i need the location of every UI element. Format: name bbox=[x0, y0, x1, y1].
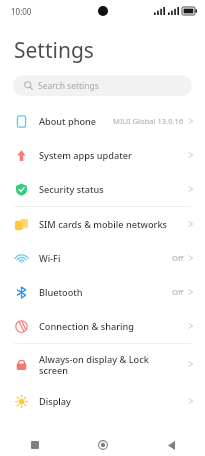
button[interactable]: Wi-Fi bbox=[0, 241, 205, 275]
button[interactable]: System apps updater bbox=[0, 138, 205, 172]
button[interactable]: About phone bbox=[0, 104, 205, 138]
staticText: Connection & sharing bbox=[39, 320, 188, 333]
button[interactable]: Back bbox=[137, 434, 205, 456]
staticText: MIUI Global 13.0.16 bbox=[113, 116, 184, 126]
button[interactable]: Security status bbox=[0, 172, 205, 206]
staticText: 10:00 bbox=[11, 6, 32, 17]
button[interactable]: SIM cards & mobile networks bbox=[0, 207, 205, 241]
staticText: SIM cards & mobile networks bbox=[39, 218, 188, 231]
staticText: Always-on display & Lock screen bbox=[39, 353, 188, 376]
staticText: Security status bbox=[39, 183, 188, 196]
staticText: About phone bbox=[39, 115, 113, 128]
button[interactable]: Always-on display & Lock screen bbox=[0, 344, 205, 384]
staticText: Off bbox=[172, 253, 184, 263]
staticText: Display bbox=[39, 395, 188, 408]
button[interactable]: Search settings bbox=[13, 75, 192, 96]
button[interactable]: Display bbox=[0, 384, 205, 418]
staticText: Settings bbox=[14, 36, 94, 65]
staticText: Bluetooth bbox=[39, 286, 172, 299]
button[interactable]: Bluetooth bbox=[0, 275, 205, 309]
button[interactable]: Connection & sharing bbox=[0, 309, 205, 343]
staticText: Off bbox=[172, 287, 184, 297]
staticText: Search settings bbox=[38, 80, 99, 92]
staticText: Wi-Fi bbox=[39, 252, 172, 265]
staticText: System apps updater bbox=[39, 149, 188, 162]
button[interactable]: Home bbox=[69, 434, 137, 456]
button[interactable]: Recent apps bbox=[0, 434, 69, 456]
